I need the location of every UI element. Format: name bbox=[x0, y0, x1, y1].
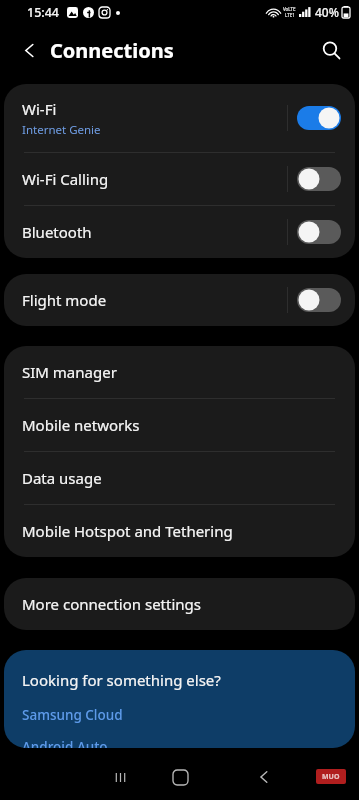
button[interactable]: Recents bbox=[100, 757, 140, 797]
button[interactable]: Mobile networks bbox=[4, 399, 355, 451]
button[interactable]: Wi-Fi on bbox=[297, 106, 341, 130]
button[interactable]: Wi-Fi Calling bbox=[4, 153, 355, 205]
button[interactable]: Back bbox=[244, 757, 284, 797]
button[interactable]: Flight mode bbox=[4, 274, 355, 326]
button[interactable]: Back bbox=[12, 33, 46, 67]
staticText: 15:44 bbox=[27, 4, 60, 21]
button[interactable]: Data usage bbox=[4, 452, 355, 504]
staticText: Bluetooth bbox=[22, 222, 92, 242]
button[interactable]: More connection settings bbox=[4, 578, 355, 630]
button[interactable]: Android Auto bbox=[22, 738, 108, 748]
staticText: Wi-Fi Calling bbox=[22, 169, 109, 189]
staticText: Flight mode bbox=[22, 290, 107, 310]
staticText: Wi-Fi bbox=[22, 99, 57, 119]
button[interactable]: Samsung Cloud bbox=[22, 706, 123, 724]
button[interactable]: Wi-Fi bbox=[4, 84, 355, 152]
staticText: Data usage bbox=[22, 468, 102, 488]
button[interactable]: Home bbox=[160, 757, 200, 797]
button[interactable]: MUO bbox=[316, 769, 346, 784]
button[interactable]: Looking for something else? bbox=[4, 650, 355, 748]
button[interactable]: Bluetooth bbox=[4, 206, 355, 258]
staticText: Mobile networks bbox=[22, 415, 140, 435]
button[interactable]: Flight mode off bbox=[297, 288, 341, 312]
staticText: Connections bbox=[50, 37, 174, 64]
staticText: More connection settings bbox=[22, 594, 201, 614]
staticText: Mobile Hotspot and Tethering bbox=[22, 521, 233, 541]
staticText: SIM manager bbox=[22, 362, 117, 382]
staticText: Internet Genie bbox=[22, 122, 101, 138]
staticText: MUO bbox=[322, 772, 340, 782]
button[interactable]: Bluetooth off bbox=[297, 220, 341, 244]
button[interactable]: SIM manager bbox=[4, 346, 355, 398]
staticText: LTE1 bbox=[285, 12, 295, 18]
button[interactable]: Mobile Hotspot and Tethering bbox=[4, 505, 355, 557]
staticText: Looking for something else? bbox=[22, 670, 221, 690]
button[interactable]: Wi-Fi Calling off bbox=[297, 167, 341, 191]
staticText: VoLTE bbox=[283, 6, 296, 12]
button[interactable]: Search bbox=[314, 33, 348, 67]
staticText: 40% bbox=[315, 4, 339, 20]
